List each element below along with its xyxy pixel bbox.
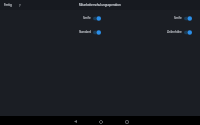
staticText: ? (19, 3, 21, 8)
button[interactable]: Fertig (0, 1, 16, 9)
button[interactable]: Standard (1, 25, 101, 39)
button[interactable]: Help (16, 1, 24, 9)
button[interactable]: Back (69, 118, 81, 125)
staticText: Standard (79, 30, 91, 34)
staticText: Mitarbeiterschulungsoperation (79, 3, 121, 7)
staticText: Fertig (4, 3, 12, 7)
staticText: Zeilenhöhe (167, 30, 182, 34)
staticText: Serife (174, 16, 182, 20)
button[interactable]: Recents (121, 118, 133, 125)
button[interactable]: Serife (1, 11, 101, 25)
staticText: Serife (83, 16, 91, 20)
button[interactable]: Home (95, 118, 107, 125)
button[interactable]: Zeilenhöhe (100, 25, 192, 39)
button[interactable]: Serife (100, 11, 192, 25)
